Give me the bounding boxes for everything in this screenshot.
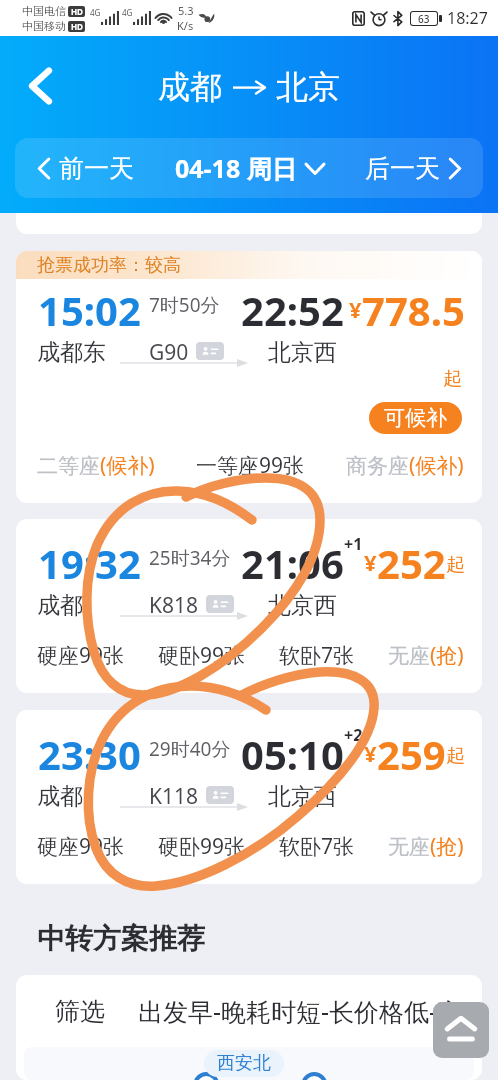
staticText: 北京西 <box>268 338 337 364</box>
staticText: 7时50分 <box>149 292 220 318</box>
staticText: 中转方案推荐 <box>37 921 205 956</box>
staticText: 22:52 <box>241 283 344 329</box>
staticText: 04-18 周日 <box>175 151 297 185</box>
staticText: K818 <box>149 591 199 617</box>
staticText: HD <box>71 21 83 32</box>
staticText: 21:06 <box>241 536 344 582</box>
staticText: 二等座(候补) <box>37 451 155 480</box>
staticText: ¥ <box>364 547 377 577</box>
staticText: 19:32 <box>38 536 141 582</box>
staticText: 29时40分 <box>149 736 231 762</box>
staticText: 软卧7张 <box>279 832 355 861</box>
staticText: 无座(抢) <box>388 832 464 861</box>
staticText: 起 <box>446 553 465 577</box>
staticText: 商务座(候补) <box>346 451 464 480</box>
staticText: 4G <box>122 7 133 18</box>
staticText: 硬卧99张 <box>158 641 246 670</box>
button[interactable]: Scroll to top <box>433 1002 489 1058</box>
staticText: 15:02 <box>38 283 141 329</box>
staticText: 一等座99张 <box>196 451 305 480</box>
staticText: G90 <box>149 338 189 364</box>
staticText: 抢票成功率：较高 <box>37 254 181 277</box>
staticText: 18:27 <box>447 7 488 29</box>
staticText: 23:30 <box>38 727 141 773</box>
staticText: 出发早-晚耗时短-长价格低-高 <box>138 994 463 1028</box>
staticText: 25时34分 <box>149 545 231 571</box>
staticText: 252 <box>377 536 446 582</box>
button[interactable]: Back <box>12 58 68 114</box>
button[interactable]: 抢票成功率：较高 <box>16 251 482 503</box>
button[interactable]: 筛选 <box>55 996 105 1027</box>
staticText: 05:10 <box>241 727 344 773</box>
staticText: 中国电信 <box>22 4 66 18</box>
staticText: 成都 <box>37 591 83 617</box>
staticText: K118 <box>149 782 199 808</box>
button[interactable]: 前一天 <box>15 138 156 198</box>
staticText: 4G <box>90 7 101 18</box>
staticText: ¥ <box>364 738 377 768</box>
staticText: 成都东 <box>37 338 106 364</box>
staticText: 起 <box>446 744 465 768</box>
staticText: HD <box>71 6 83 17</box>
staticText: ¥ <box>349 294 362 324</box>
staticText: 北京西 <box>268 591 337 617</box>
staticText: 北京西 <box>268 782 337 808</box>
staticText: 5.3 <box>178 3 194 18</box>
staticText: 软卧7张 <box>279 641 355 670</box>
staticText: 起 <box>443 367 462 391</box>
staticText: K/s <box>177 18 194 33</box>
staticText: 硬座99张 <box>37 641 125 670</box>
button[interactable]: 23:30 <box>16 710 482 884</box>
button[interactable]: 可候补 <box>369 402 462 434</box>
button[interactable]: 04-18 周日 <box>156 138 342 198</box>
button[interactable]: 19:32 <box>16 519 482 693</box>
staticText: 259 <box>377 727 446 773</box>
staticText: 中国移动 <box>22 19 66 33</box>
button[interactable]: 西安北 <box>24 1047 474 1080</box>
staticText: 成都 <box>158 67 222 107</box>
staticText: 778.5 <box>362 283 465 329</box>
staticText: 后一天 <box>365 153 440 184</box>
staticText: 无座(抢) <box>388 641 464 670</box>
staticText: 可候补 <box>384 405 447 431</box>
staticText: 63 <box>418 12 430 25</box>
button[interactable]: 后一天 <box>342 138 483 198</box>
staticText: 硬座99张 <box>37 832 125 861</box>
staticText: 成都 <box>37 782 83 808</box>
staticText: 北京 <box>276 67 340 107</box>
staticText: +2 <box>344 724 363 746</box>
staticText: 前一天 <box>59 153 134 184</box>
staticText: 西安北 <box>217 1052 271 1075</box>
staticText: +1 <box>344 533 363 555</box>
staticText: 硬卧99张 <box>158 832 246 861</box>
